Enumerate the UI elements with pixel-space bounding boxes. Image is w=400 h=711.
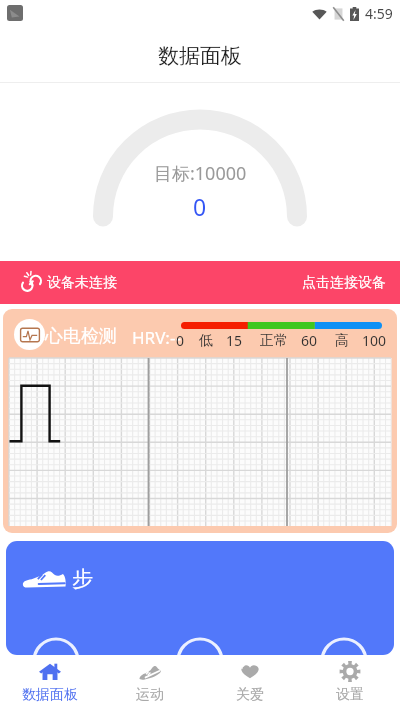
staticText: 关爱 [236, 686, 264, 704]
staticText: HRV:-- [132, 326, 181, 349]
staticText: 低 [199, 332, 213, 350]
staticText: 点击连接设备 [302, 274, 386, 292]
staticText: 0 [193, 191, 207, 222]
button[interactable]: 设备未连接 [0, 261, 400, 304]
staticText: 4:59 [365, 4, 393, 23]
staticText: 目标:10000 [154, 161, 247, 186]
staticText: 数据面板 [158, 43, 242, 69]
staticText: 运动 [136, 686, 164, 704]
button[interactable]: 步 [6, 541, 394, 655]
staticText: 正常 [260, 332, 288, 350]
button[interactable]: 设置 [300, 655, 400, 711]
button[interactable]: 关爱 [200, 655, 300, 711]
staticText: 设置 [336, 686, 364, 704]
staticText: 数据面板 [22, 686, 78, 704]
staticText: 60 [301, 331, 318, 350]
staticText: 心电检测 [45, 325, 117, 348]
staticText: 设备未连接 [47, 274, 117, 292]
staticText: 高 [335, 332, 349, 350]
staticText: 100 [362, 331, 387, 350]
button[interactable]: 心电检测 [3, 309, 397, 533]
staticText: 步 [72, 566, 93, 592]
staticText: 0 [176, 331, 185, 350]
button[interactable]: 运动 [100, 655, 200, 711]
staticText: 15 [226, 331, 243, 350]
button[interactable]: 数据面板 [0, 655, 100, 711]
